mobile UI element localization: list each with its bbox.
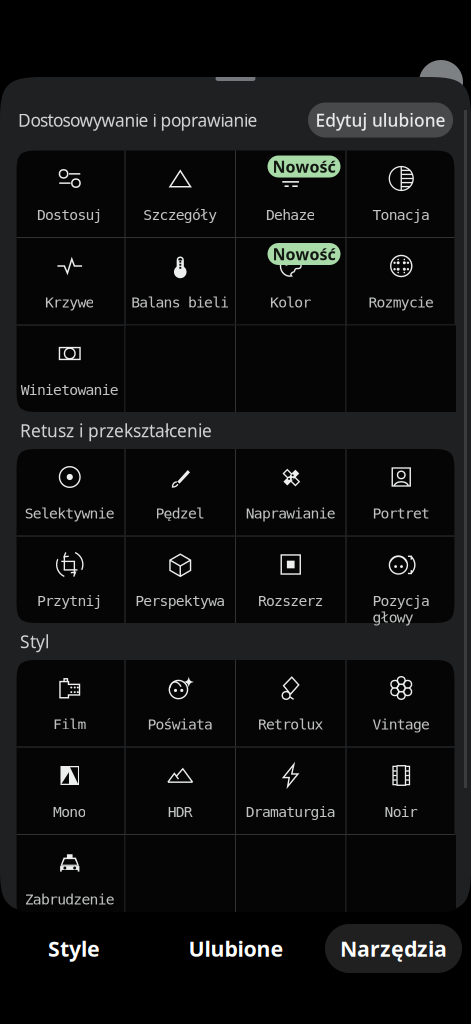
staticText: Portret bbox=[372, 505, 430, 522]
staticText: Vintage bbox=[372, 716, 430, 733]
staticText: Retrolux bbox=[258, 716, 324, 733]
staticText: Szczegóły bbox=[143, 206, 217, 223]
button[interactable]: Film bbox=[15, 660, 124, 746]
staticText: Rozmycie bbox=[368, 294, 434, 311]
staticText: Noir bbox=[385, 803, 418, 820]
staticText: Film bbox=[53, 716, 86, 733]
staticText: Kolor bbox=[270, 294, 311, 311]
staticText: Style bbox=[48, 934, 100, 963]
staticText: Poświata bbox=[147, 716, 213, 733]
staticText: Dramaturgia bbox=[246, 803, 336, 820]
button[interactable]: Zabrudzenie bbox=[15, 835, 124, 921]
staticText: Perspektywa bbox=[135, 592, 225, 609]
button[interactable]: Edytuj ulubione bbox=[308, 102, 453, 137]
button[interactable]: Dramaturgia bbox=[236, 747, 345, 834]
staticText: HDR bbox=[168, 803, 193, 820]
staticText: Dostosowywanie i poprawianie bbox=[18, 108, 257, 131]
staticText: Pozycja głowy bbox=[372, 592, 430, 626]
staticText: Retusz i przekształcenie bbox=[20, 419, 212, 442]
staticText: Edytuj ulubione bbox=[315, 108, 446, 131]
staticText: Pędzel bbox=[155, 505, 205, 522]
button[interactable]: Dehaze bbox=[236, 150, 345, 237]
button[interactable]: Selektywnie bbox=[15, 449, 124, 535]
staticText: Narzędzia bbox=[340, 934, 447, 963]
staticText: Naprawianie bbox=[246, 505, 336, 522]
staticText: Winietowanie bbox=[21, 381, 119, 398]
button[interactable]: Style bbox=[1, 924, 147, 973]
staticText: Krzywe bbox=[45, 294, 94, 311]
staticText: Nowość bbox=[272, 156, 335, 177]
button[interactable]: Retrolux bbox=[236, 660, 345, 746]
button[interactable]: Przytnij bbox=[15, 536, 124, 623]
staticText: Mono bbox=[53, 803, 86, 820]
button[interactable]: Naprawianie bbox=[236, 449, 345, 535]
button[interactable]: Krzywe bbox=[15, 238, 124, 324]
button[interactable]: Perspektywa bbox=[125, 536, 235, 623]
button[interactable]: Portret bbox=[346, 449, 456, 535]
button[interactable]: Pędzel bbox=[125, 449, 235, 535]
staticText: Selektywnie bbox=[25, 505, 115, 522]
button[interactable]: Poświata bbox=[125, 660, 235, 746]
button[interactable]: Noir bbox=[346, 747, 456, 834]
staticText: Balans bieli bbox=[131, 294, 229, 311]
staticText: Zabrudzenie bbox=[25, 891, 115, 908]
staticText: Nowość bbox=[272, 243, 335, 265]
staticText: Dehaze bbox=[266, 206, 315, 223]
button[interactable]: HDR bbox=[125, 747, 235, 834]
button[interactable]: Rozmycie bbox=[346, 238, 456, 324]
button[interactable]: Rozszerz bbox=[236, 536, 345, 623]
button[interactable]: Balans bieli bbox=[125, 238, 235, 324]
button[interactable]: Mono bbox=[15, 747, 124, 834]
button[interactable]: Tonacja bbox=[346, 150, 456, 237]
button[interactable]: Narzędzia bbox=[325, 924, 462, 973]
staticText: Ulubione bbox=[188, 934, 283, 963]
staticText: Dostosuj bbox=[37, 206, 103, 223]
button[interactable]: Kolor bbox=[236, 238, 345, 324]
button[interactable]: Vintage bbox=[346, 660, 456, 746]
staticText: Tonacja bbox=[372, 206, 430, 223]
staticText: Styl bbox=[20, 630, 49, 653]
staticText: Rozszerz bbox=[258, 592, 324, 609]
button[interactable]: Winietowanie bbox=[15, 325, 124, 412]
button[interactable]: Ulubione bbox=[147, 924, 325, 973]
staticText: Przytnij bbox=[37, 592, 103, 609]
button[interactable]: Szczegóły bbox=[125, 150, 235, 237]
button[interactable]: Pozycja głowy bbox=[346, 536, 456, 623]
button[interactable]: Dostosuj bbox=[15, 150, 124, 237]
